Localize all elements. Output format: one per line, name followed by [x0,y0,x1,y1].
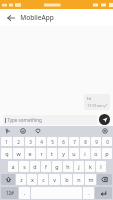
button[interactable]: 9 [91,137,101,146]
button[interactable]: Back [4,11,17,24]
button[interactable]: , [19,187,30,199]
button[interactable]: 0 [102,137,112,146]
button[interactable]: 8 [80,137,90,146]
staticText: 9 [95,139,98,145]
staticText: q [5,150,9,157]
staticText: 3 [29,139,32,145]
staticText: k [89,163,92,170]
staticText: 11:19 am [87,103,102,108]
staticText: Type something [7,117,42,123]
button[interactable]: Sticker [4,127,12,135]
staticText: z [20,176,23,183]
staticText: 12# [6,190,14,196]
staticText: MobileApp [20,13,54,22]
button[interactable]: f [41,161,51,172]
staticText: 0 [106,139,109,145]
button[interactable]: t [47,148,57,159]
staticText: g [55,163,59,170]
button[interactable]: q [1,148,12,159]
button[interactable]: 2 [13,137,24,146]
staticText: h [66,163,70,170]
staticText: 5 [51,139,54,145]
staticText: t [51,150,53,157]
staticText: c [42,176,45,183]
staticText: i [84,150,86,157]
button[interactable]: 4 [36,137,46,146]
staticText: f [45,163,47,170]
staticText: 8 [84,139,87,145]
button[interactable]: r [36,148,46,159]
button[interactable]: h [63,161,73,172]
staticText: r [40,150,43,157]
button[interactable]: hi [84,94,110,110]
staticText: a [11,163,15,170]
staticText: e [28,150,32,157]
button[interactable]: w [13,148,24,159]
button[interactable]: v [49,174,60,185]
button[interactable]: 3 [25,137,35,146]
staticText: 7 [73,139,76,145]
button[interactable]: Send [99,114,110,125]
staticText: p [105,150,109,157]
button[interactable]: 5 [47,137,57,146]
button[interactable]: g [52,161,62,172]
staticText: y [62,150,65,157]
staticText: x [31,176,34,183]
button[interactable]: y [58,148,68,159]
button[interactable]: j [74,161,84,172]
button[interactable]: o [91,148,101,159]
staticText: 2 [17,139,20,145]
staticText: . [88,190,90,197]
staticText: v [53,176,56,183]
staticText: b [65,176,69,183]
staticText: u [72,150,76,157]
button[interactable]: 6 [58,137,68,146]
button[interactable]: . [83,187,94,199]
staticText: m [88,176,94,183]
button[interactable]: c [38,174,48,185]
staticText: w [16,150,21,157]
button[interactable]: s [19,161,29,172]
staticText: 4 [40,139,43,145]
button[interactable]: k [85,161,95,172]
button[interactable]: m [85,174,96,185]
button[interactable]: Settings [101,127,109,135]
button[interactable]: Backspace [97,174,112,185]
button[interactable]: Type something [3,115,97,125]
button[interactable]: d [30,161,40,172]
staticText: l [100,163,102,170]
button[interactable]: l [96,161,106,172]
button[interactable]: p [102,148,112,159]
button[interactable]: b [61,174,72,185]
button[interactable]: 7 [69,137,79,146]
button[interactable]: x [27,174,37,185]
button[interactable]: a [8,161,18,172]
staticText: s [23,163,26,170]
staticText: j [78,163,80,170]
button[interactable]: 1 [1,137,12,146]
staticText: o [94,150,98,157]
button[interactable]: z [16,174,26,185]
button[interactable]: 12# [1,187,18,199]
staticText: , [24,190,26,197]
button[interactable]: u [69,148,79,159]
staticText: hi [87,96,91,102]
staticText: d [33,163,37,170]
button[interactable]: Theme [34,127,42,135]
staticText: 1 [5,139,8,145]
button[interactable]: e [25,148,35,159]
button[interactable]: Enter [95,187,112,199]
staticText: n [77,176,81,183]
button[interactable]: n [73,174,84,185]
button[interactable]: Shift [1,174,15,185]
button[interactable]: Emoji [19,127,27,135]
staticText: 6 [62,139,65,145]
button[interactable]: i [80,148,90,159]
